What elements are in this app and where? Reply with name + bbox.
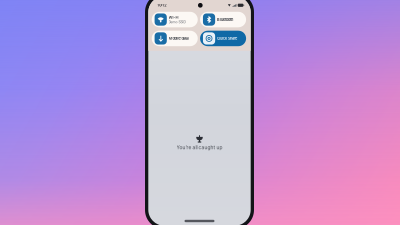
staticText: Wi-Fi	[169, 15, 179, 20]
button[interactable]: Quick Share	[200, 31, 246, 46]
button[interactable]: Bluetooth	[200, 12, 246, 27]
staticText: 10:12	[157, 3, 166, 7]
button[interactable]: Mobile data	[152, 31, 198, 46]
staticText: You're all caught up	[176, 145, 222, 150]
staticText: Demo SSID	[169, 20, 186, 24]
button[interactable]: Wi-Fi	[152, 12, 198, 27]
staticText: Bluetooth	[217, 17, 233, 22]
staticText: Quick Share	[217, 36, 237, 41]
staticText: Mobile data	[169, 36, 189, 41]
